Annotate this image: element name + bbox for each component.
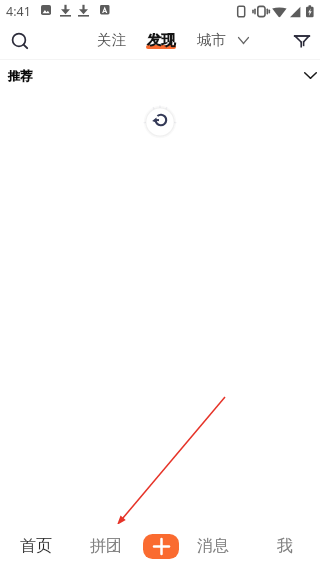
button[interactable]: Filter [287, 26, 317, 56]
staticText: 城市 [197, 31, 226, 49]
staticText: 我 [277, 536, 293, 556]
button[interactable]: 我 [255, 524, 315, 568]
button[interactable]: Add [143, 534, 179, 559]
button[interactable]: Search [5, 26, 35, 56]
button[interactable]: 首页 [6, 524, 66, 568]
button[interactable]: 发现 [138, 22, 184, 59]
button[interactable]: 推荐 [0, 60, 320, 90]
button[interactable]: 城市 [189, 22, 257, 59]
staticText: 发现 [147, 31, 176, 49]
button[interactable]: 拼团 [76, 524, 136, 568]
button[interactable]: 关注 [89, 22, 134, 59]
staticText: 关注 [97, 31, 126, 49]
staticText: 消息 [197, 536, 229, 556]
staticText: 推荐 [8, 68, 32, 83]
staticText: 首页 [20, 536, 52, 556]
staticText: 4:41 [6, 3, 31, 20]
staticText: 拼团 [90, 536, 122, 556]
button[interactable]: 消息 [183, 524, 243, 568]
